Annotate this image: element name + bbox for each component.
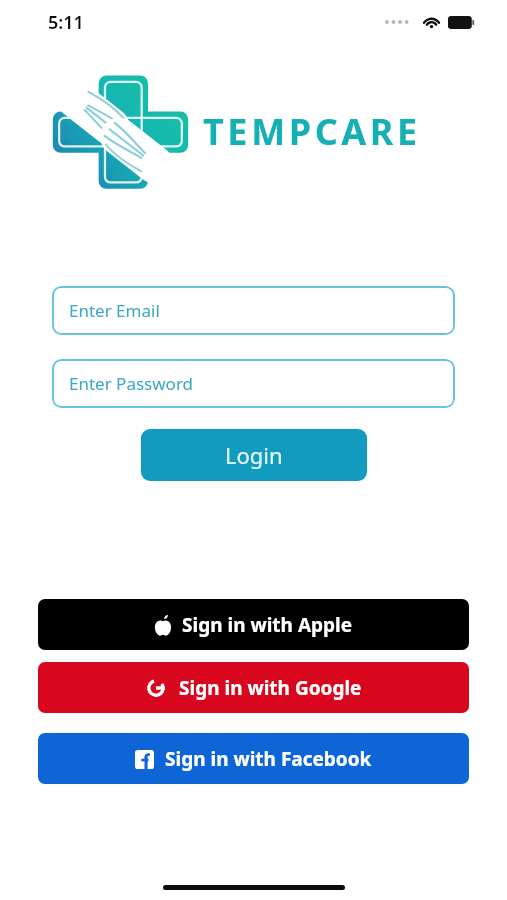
button[interactable]: Sign in with Apple — [38, 599, 469, 650]
staticText: Enter Password — [69, 372, 194, 395]
staticText: Sign in with Google — [179, 675, 362, 701]
button[interactable]: Login — [141, 429, 367, 481]
staticText: Sign in with Facebook — [165, 746, 372, 772]
staticText: Enter Email — [69, 299, 160, 322]
button[interactable]: Sign in with Facebook — [38, 733, 469, 784]
staticText: TEMPCARE — [203, 107, 421, 156]
button[interactable]: Sign in with Google — [38, 662, 469, 713]
staticText: 5:11 — [48, 10, 84, 35]
staticText: Sign in with Apple — [182, 612, 353, 638]
staticText: Login — [225, 440, 283, 470]
button[interactable]: Enter Password — [52, 359, 455, 408]
button[interactable]: Enter Email — [52, 286, 455, 335]
